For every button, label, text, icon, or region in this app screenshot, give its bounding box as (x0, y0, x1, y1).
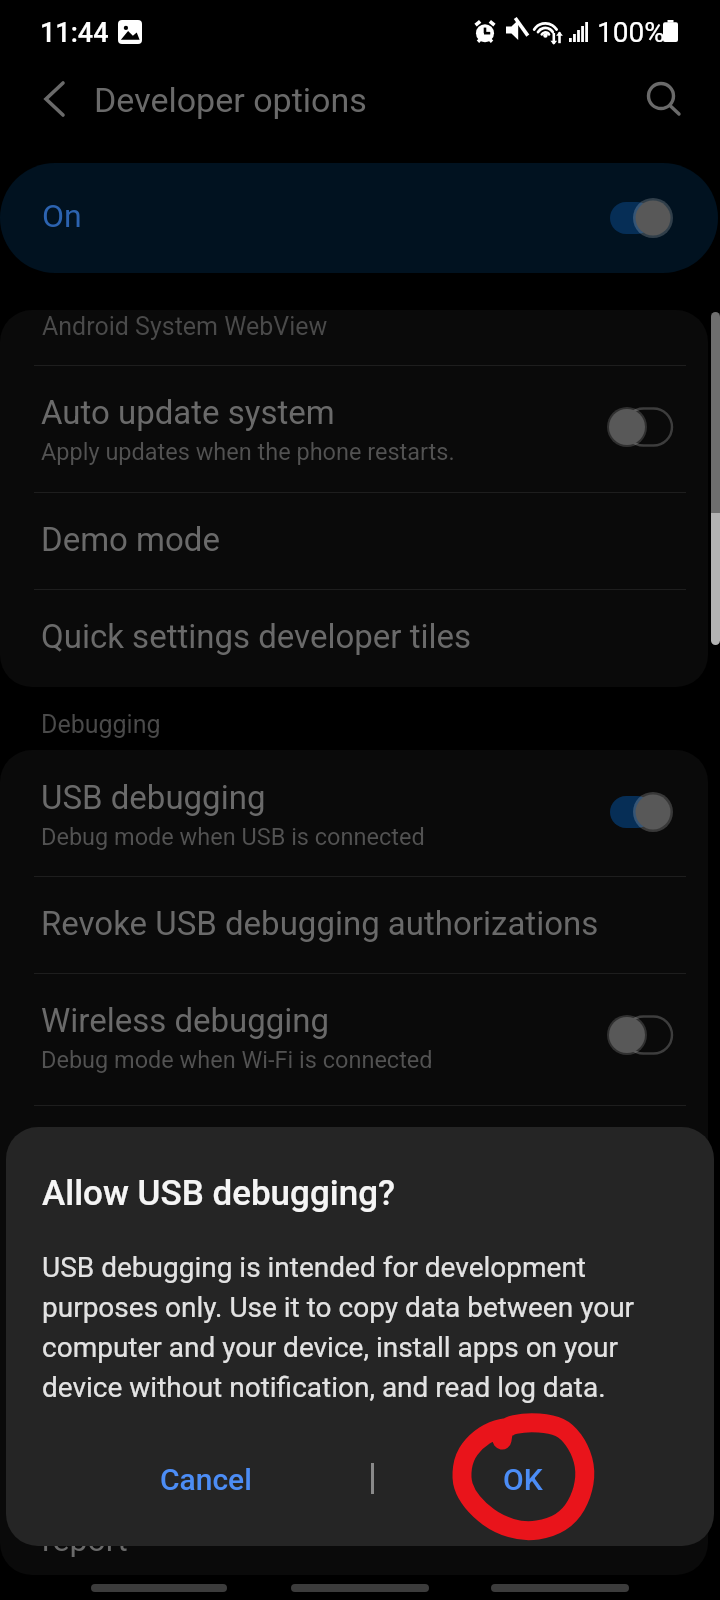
staticText: Revoke USB debugging authorizations (41, 904, 599, 943)
button[interactable]: Search (634, 70, 692, 128)
button[interactable]: Back (491, 1584, 629, 1592)
button[interactable]: Revoke USB debugging authorizations (0, 876, 708, 973)
staticText: Debugging (41, 710, 161, 739)
button[interactable]: Back (26, 70, 84, 128)
staticText: Developer options (94, 80, 367, 120)
button[interactable]: Disable adb authorization timeout (0, 1105, 708, 1202)
staticText: Cancel (160, 1462, 252, 1497)
button[interactable]: Cancel (118, 1441, 293, 1517)
button[interactable]: OK (435, 1441, 610, 1517)
button[interactable]: Turn off (610, 792, 674, 832)
button[interactable]: Quick settings developer tiles (0, 589, 708, 687)
button[interactable]: Turn on (610, 1015, 674, 1055)
staticText: On (42, 197, 82, 235)
button[interactable]: Bug report shortcut (0, 1202, 708, 1329)
button[interactable]: Home (291, 1584, 429, 1592)
button[interactable]: Demo mode (0, 492, 708, 589)
button[interactable]: Turn off (610, 198, 674, 238)
button[interactable]: On (0, 163, 718, 273)
staticText: OK (503, 1462, 543, 1497)
button[interactable]: USB debugging (0, 750, 708, 877)
staticText: Allow USB debugging? (42, 1173, 396, 1214)
staticText: Android System WebView (42, 312, 328, 341)
staticText: 11:44 (40, 17, 109, 49)
staticText: Bug report shortcut (41, 1230, 327, 1269)
staticText: Quick settings developer tiles (41, 617, 472, 656)
staticText: Wireless debugging (41, 1001, 330, 1040)
staticText: Demo mode (41, 520, 220, 559)
staticText: 100% (597, 16, 665, 49)
button[interactable]: Auto update system (0, 365, 708, 492)
staticText: Debug mode when USB is connected (41, 823, 425, 851)
staticText: Debug mode when Wi-Fi is connected (41, 1046, 433, 1074)
staticText: Show a button in the power menu for taki… (41, 1275, 628, 1303)
button[interactable]: Recents (91, 1584, 227, 1592)
button[interactable]: Turn on (610, 407, 674, 447)
button[interactable]: Wireless debugging (0, 973, 708, 1100)
staticText: USB debugging (41, 778, 266, 817)
staticText: Auto update system (41, 393, 335, 432)
staticText: report (42, 1521, 128, 1559)
staticText: Apply updates when the phone restarts. (41, 438, 455, 466)
staticText: USB debugging is intended for developmen… (42, 1251, 657, 1404)
